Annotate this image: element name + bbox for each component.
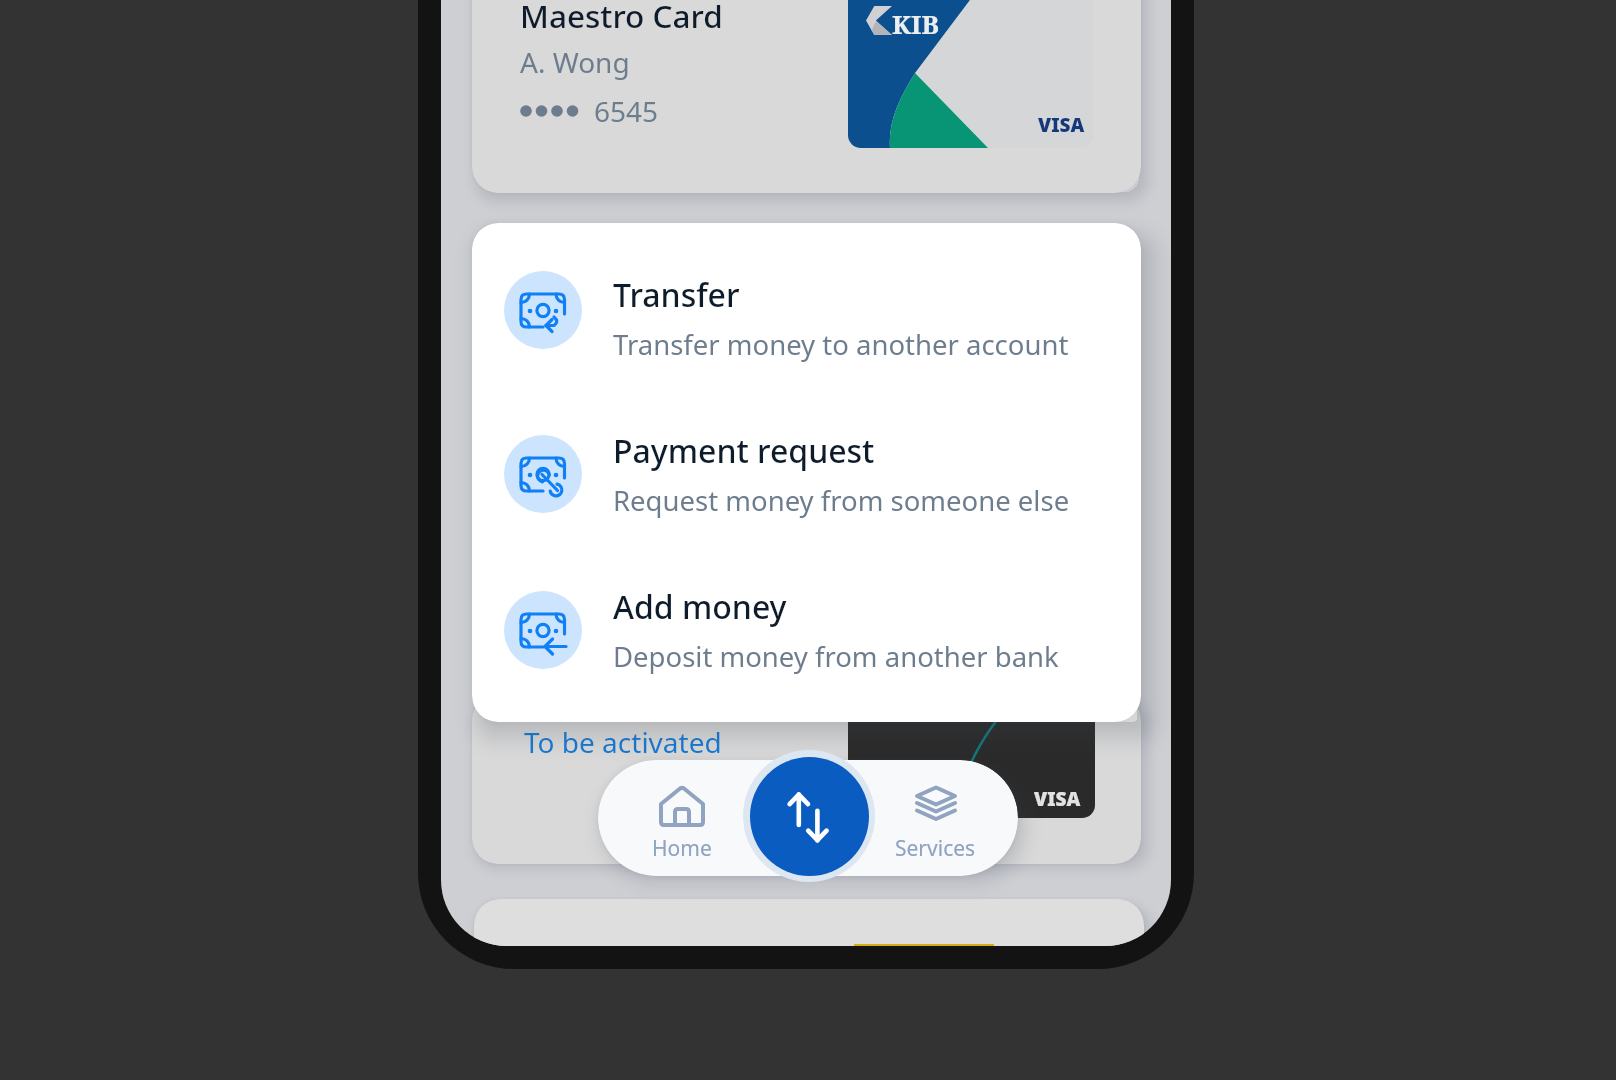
staticText: Transfer money to another account	[613, 326, 1069, 363]
staticText: Transfer	[613, 273, 740, 317]
staticText: To be activated	[524, 723, 722, 761]
button[interactable]	[474, 899, 1144, 969]
button[interactable]: Transfer money	[750, 757, 869, 876]
staticText: A. Wong	[520, 43, 630, 81]
button[interactable]: Add money	[472, 591, 1141, 699]
staticText: Request money from someone else	[613, 482, 1070, 519]
staticText: Add money	[613, 585, 787, 629]
staticText: Services	[895, 834, 976, 863]
staticText: Maestro Card	[520, 0, 723, 37]
staticText: KIB	[892, 6, 939, 41]
staticText: Deposit money from another bank	[613, 638, 1059, 675]
button[interactable]: Maestro Card	[472, 0, 1141, 193]
staticText: VISA	[1038, 112, 1085, 138]
button[interactable]: Services	[858, 768, 1013, 880]
button[interactable]: Transfer	[472, 271, 1141, 379]
button[interactable]: To be activated	[472, 694, 1141, 864]
button[interactable]: Home	[604, 768, 759, 880]
staticText: Payment request	[613, 429, 875, 473]
staticText: Home	[652, 834, 712, 863]
button[interactable]: Payment request	[472, 435, 1141, 543]
staticText: VISA	[1034, 786, 1081, 812]
staticText: 6545	[594, 92, 659, 130]
